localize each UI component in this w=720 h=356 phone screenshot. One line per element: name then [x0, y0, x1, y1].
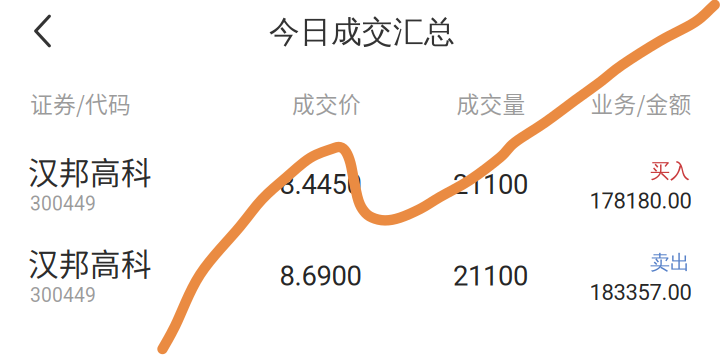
- staticText: 证券/代码: [30, 87, 131, 119]
- staticText: 8.6900: [279, 260, 361, 292]
- staticText: 21100: [453, 168, 528, 201]
- staticText: 183357.00: [589, 280, 691, 305]
- staticText: 汉邦高科: [28, 240, 152, 285]
- staticText: 买入: [650, 158, 690, 184]
- staticText: 成交量: [456, 87, 525, 119]
- staticText: 汉邦高科: [28, 149, 152, 193]
- staticText: 300449: [30, 193, 96, 215]
- button[interactable]: 汉邦高科: [0, 233, 720, 324]
- staticText: 今日成交汇总: [269, 13, 455, 51]
- button[interactable]: 汉邦高科: [0, 142, 720, 233]
- staticText: 8.4450: [279, 168, 361, 201]
- staticText: 300449: [30, 284, 96, 307]
- staticText: 卖出: [650, 250, 690, 275]
- staticText: 178180.00: [589, 188, 691, 214]
- staticText: 业务/金额: [590, 87, 691, 119]
- staticText: 21100: [453, 260, 528, 292]
- staticText: 成交价: [292, 87, 361, 119]
- button[interactable]: Back: [10, 2, 74, 60]
